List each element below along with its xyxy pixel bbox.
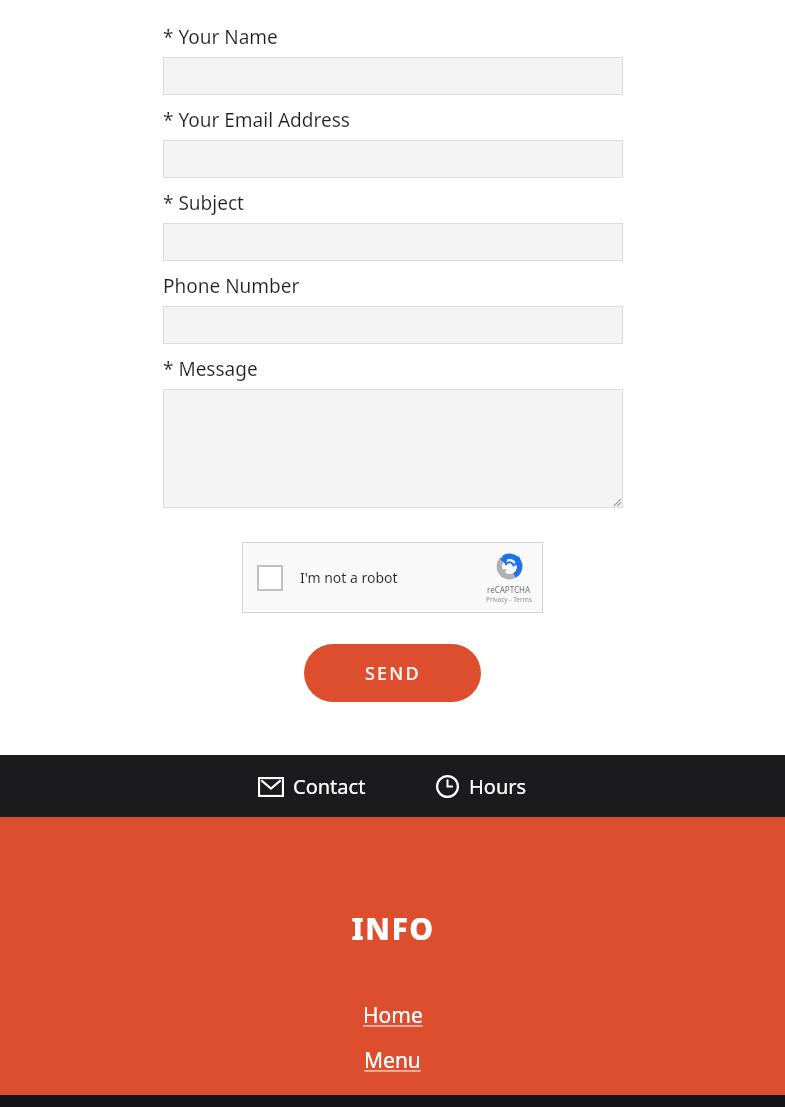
staticText: * Message [163, 356, 258, 382]
staticText: * Your Email Address [163, 107, 350, 133]
button[interactable]: Hours [430, 765, 533, 808]
button[interactable] [163, 389, 623, 508]
staticText: Home [363, 1001, 423, 1030]
button[interactable] [163, 223, 623, 261]
button[interactable]: I'm not a robot [242, 542, 543, 613]
staticText: SEND [365, 661, 421, 686]
staticText: * Subject [163, 190, 244, 216]
button[interactable] [163, 57, 623, 95]
staticText: reCAPTCHA [487, 584, 531, 595]
staticText: Phone Number [163, 273, 300, 299]
staticText: I'm not a robot [300, 568, 398, 587]
staticText: Menu [364, 1046, 421, 1075]
staticText: Contact [293, 773, 366, 800]
staticText: Privacy - Terms [486, 595, 532, 604]
button[interactable]: Menu [360, 1044, 425, 1077]
button[interactable] [163, 140, 623, 178]
staticText: * Your Name [163, 24, 278, 50]
button[interactable]: Home [359, 999, 427, 1032]
button[interactable]: SEND [304, 644, 481, 702]
button[interactable] [163, 306, 623, 344]
staticText: INFO [351, 908, 435, 949]
button[interactable]: Contact [252, 765, 372, 808]
staticText: Hours [469, 773, 527, 800]
